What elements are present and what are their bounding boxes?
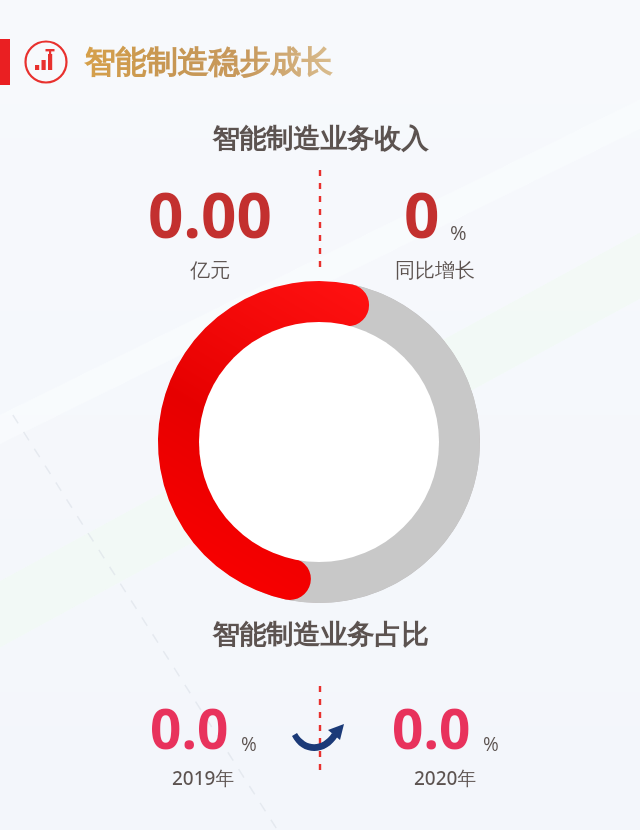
staticText: 亿元 [190,258,230,283]
button[interactable]: 0.00 [120,172,300,283]
staticText: 智能制造稳步成长 [84,43,332,82]
staticText: 0.00 [148,172,272,256]
staticText: 2020年 [414,765,477,791]
other: Chart icon [24,40,68,84]
staticText: 0 [404,172,440,256]
button[interactable]: Business ratio donut chart [158,281,480,603]
staticText: 0.0 [150,690,229,765]
staticText: 0.0 [392,690,471,765]
button[interactable]: 0 [345,172,525,283]
button[interactable]: Chart icon [0,38,332,86]
staticText: 智能制造业务占比 [212,618,428,652]
staticText: 同比增长 [395,258,475,283]
button[interactable]: 0.0 [108,690,298,791]
button[interactable]: 0.0 [350,690,540,791]
staticText: % [241,731,257,757]
staticText: 智能制造业务收入 [212,122,428,156]
staticText: % [450,219,467,246]
staticText: 2019年 [172,765,235,791]
other: Growth arrow [288,716,350,758]
staticText: % [483,731,499,757]
